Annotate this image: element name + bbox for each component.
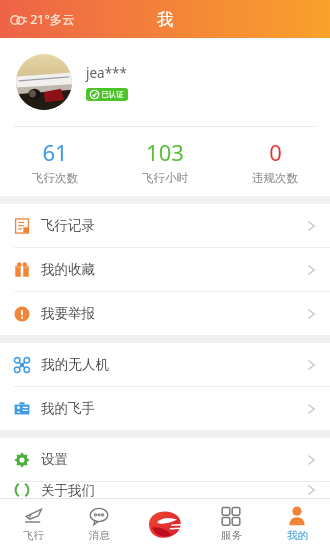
staticText: jea*** [86,64,127,82]
button[interactable]: jea*** [0,38,330,126]
staticText: 我要举报 [41,305,95,322]
staticText: 我的收藏 [41,261,95,278]
staticText: 我的飞手 [41,400,95,417]
staticText: 飞行次数 [32,171,78,185]
staticText: 已认证 [101,90,124,99]
staticText: 服务 [221,529,242,542]
button[interactable]: 飞行记录 [0,204,330,247]
button[interactable]: 我的 [264,498,330,550]
button[interactable]: 首页 [132,498,198,550]
staticText: 我的无人机 [41,356,109,373]
staticText: 103 [146,137,184,167]
button[interactable]: 我的飞手 [0,387,330,430]
staticText: 飞行记录 [41,217,95,234]
button[interactable]: 消息 [66,498,132,550]
button[interactable]: 设置 [0,438,330,481]
staticText: 关于我们 [41,482,95,498]
staticText: 设置 [41,451,68,468]
staticText: 飞行小时 [142,171,188,185]
staticText: 0 [269,137,282,167]
button[interactable]: 飞行 [0,498,66,550]
button[interactable]: 我的收藏 [0,248,330,291]
button[interactable]: 我的无人机 [0,343,330,386]
staticText: 我的 [287,529,308,542]
button[interactable]: 我要举报 [0,292,330,335]
staticText: 违规次数 [252,171,298,185]
staticText: 61 [42,137,68,167]
staticText: 21°多云 [30,11,75,28]
staticText: 消息 [89,529,110,542]
button[interactable]: 服务 [198,498,264,550]
staticText: 飞行 [23,529,44,542]
button[interactable]: 关于我们 [0,482,330,498]
staticText: 我 [157,9,174,30]
